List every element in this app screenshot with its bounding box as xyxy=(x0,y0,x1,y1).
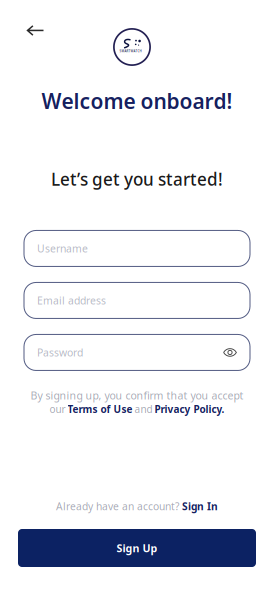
staticText: Privacy Policy. xyxy=(154,402,224,416)
staticText: Sign Up xyxy=(116,541,157,555)
button[interactable]: Back xyxy=(20,17,50,43)
staticText: Email address xyxy=(37,294,106,307)
staticText: By signing up, you confirm that you acce… xyxy=(30,388,243,402)
staticText: Let’s get you started! xyxy=(51,168,223,190)
staticText: our xyxy=(49,402,65,416)
staticText: Username xyxy=(37,242,88,255)
staticText: Welcome onboard! xyxy=(41,87,232,115)
staticText: Sign In xyxy=(182,499,218,513)
button[interactable]: Sign In xyxy=(182,499,218,513)
staticText: SMARTWATCH xyxy=(119,49,141,53)
staticText: Password xyxy=(37,346,83,359)
staticText: and xyxy=(134,402,152,416)
button[interactable]: Privacy Policy. xyxy=(154,402,224,416)
staticText: Already have an account? xyxy=(56,499,179,513)
button[interactable]: Sign Up xyxy=(18,529,256,567)
staticText: Terms of Use xyxy=(67,402,132,416)
button[interactable]: Terms of Use xyxy=(67,402,132,416)
